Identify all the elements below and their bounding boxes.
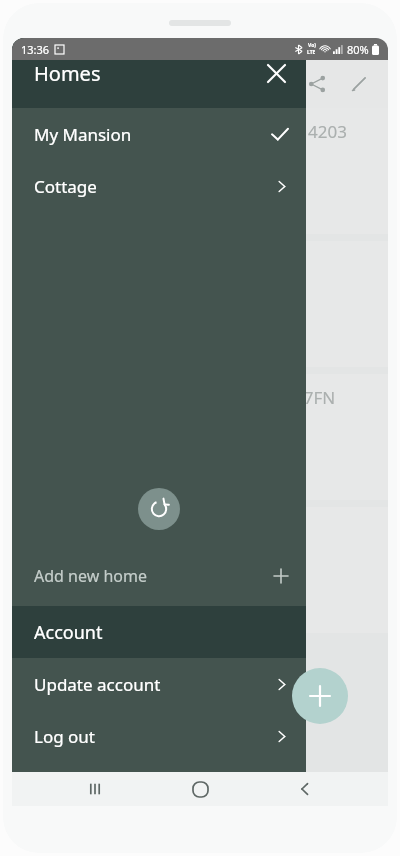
staticText: Cottage <box>34 175 97 198</box>
staticText: 13:36 <box>21 42 50 57</box>
button[interactable]: Bought TV Samsung QE55Q7FN <box>12 374 388 500</box>
button[interactable]: Add <box>292 668 348 724</box>
button[interactable]: Home <box>178 772 222 806</box>
staticText: Bought Dishwasher Miele G 4203 <box>82 120 347 143</box>
button[interactable]: Share <box>300 67 334 101</box>
button[interactable]: Fixed Sink tap <box>12 507 388 633</box>
staticText: 80% <box>347 42 369 57</box>
staticText: Vo) <box>308 42 316 49</box>
staticText: Bought TV Samsung QE55Q7FN <box>82 386 336 409</box>
button[interactable]: Back <box>283 772 327 806</box>
button[interactable]: Edit <box>342 67 376 101</box>
staticText: Log out <box>34 725 95 748</box>
button[interactable]: My Mansion <box>12 108 306 160</box>
staticText: Add new home <box>34 565 147 587</box>
button[interactable]: Close <box>256 53 296 93</box>
staticText: Fixed Sink tap <box>82 519 193 542</box>
button[interactable]: Bought Dishwasher Miele G 4203 <box>12 108 388 234</box>
button[interactable]: Refresh <box>138 488 180 530</box>
button[interactable]: Add new home <box>12 550 306 602</box>
staticText: My Mansion <box>34 123 132 146</box>
staticText: LTE <box>307 49 316 56</box>
button[interactable]: Recents <box>73 772 117 806</box>
staticText: Account <box>34 620 103 645</box>
staticText: Update account <box>34 673 161 696</box>
button[interactable]: Renovated Bathroom <box>12 241 388 367</box>
button[interactable]: Update account <box>12 658 306 710</box>
staticText: Homes <box>34 60 101 87</box>
button[interactable]: Cottage <box>12 160 306 212</box>
button[interactable]: Log out <box>12 710 306 762</box>
